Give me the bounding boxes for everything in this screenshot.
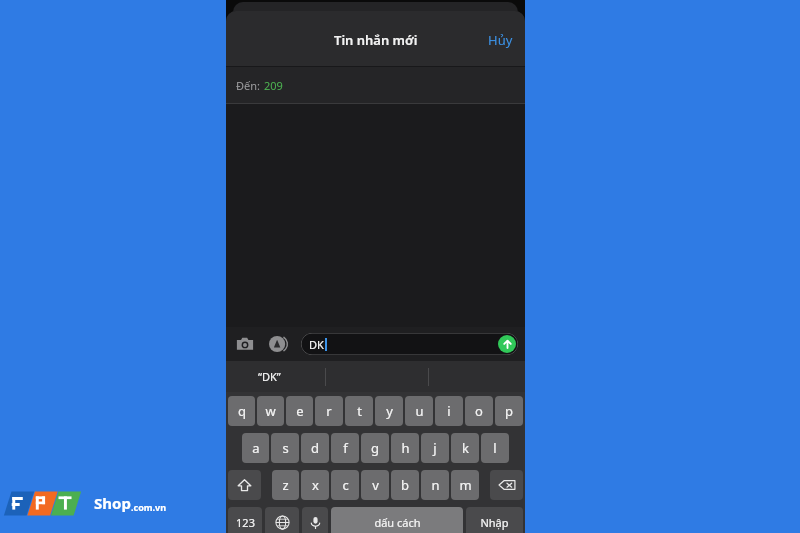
button[interactable]: Hủy bbox=[476, 25, 525, 55]
staticText: h bbox=[401, 439, 410, 457]
staticText: p bbox=[505, 402, 513, 420]
button[interactable]: 123 bbox=[228, 507, 262, 533]
button[interactable]: h bbox=[391, 433, 419, 463]
staticText: x bbox=[312, 476, 319, 494]
button[interactable]: b bbox=[391, 470, 419, 500]
button[interactable]: w bbox=[257, 396, 284, 426]
button[interactable]: Shift bbox=[228, 470, 261, 500]
button[interactable]: App Store bbox=[266, 332, 290, 356]
button[interactable]: Camera bbox=[233, 332, 257, 356]
button[interactable]: g bbox=[361, 433, 389, 463]
button[interactable]: p bbox=[495, 396, 523, 426]
staticText: u bbox=[415, 402, 424, 420]
staticText: i bbox=[447, 402, 451, 420]
button[interactable]: u bbox=[405, 396, 433, 426]
staticText: c bbox=[342, 476, 349, 494]
button[interactable]: DK bbox=[301, 333, 518, 355]
staticText: Hủy bbox=[488, 31, 513, 49]
staticText: DK bbox=[309, 337, 324, 352]
button[interactable]: n bbox=[421, 470, 449, 500]
staticText: Nhập bbox=[480, 515, 509, 530]
button[interactable]: a bbox=[242, 433, 269, 463]
button[interactable]: q bbox=[228, 396, 255, 426]
staticText: g bbox=[371, 439, 379, 457]
staticText: a bbox=[252, 439, 260, 457]
button[interactable]: s bbox=[271, 433, 299, 463]
button[interactable]: l bbox=[481, 433, 509, 463]
button[interactable]: Change keyboard bbox=[265, 507, 299, 533]
staticText: 123 bbox=[236, 515, 255, 530]
staticText: r bbox=[326, 402, 332, 420]
staticText: dấu cách bbox=[374, 515, 421, 530]
button[interactable]: t bbox=[345, 396, 373, 426]
button[interactable]: Send bbox=[498, 335, 516, 353]
staticText: d bbox=[311, 439, 319, 457]
button[interactable]: f bbox=[331, 433, 359, 463]
button[interactable]: z bbox=[272, 470, 299, 500]
staticText: j bbox=[433, 439, 437, 457]
staticText: m bbox=[459, 476, 472, 494]
staticText: s bbox=[282, 439, 289, 457]
staticText: t bbox=[357, 402, 362, 420]
staticText: z bbox=[282, 476, 289, 494]
staticText: 209 bbox=[264, 78, 283, 93]
button[interactable]: Backspace bbox=[490, 470, 523, 500]
staticText: k bbox=[462, 439, 469, 457]
button[interactable]: x bbox=[301, 470, 329, 500]
button[interactable]: dấu cách bbox=[331, 507, 463, 533]
staticText: l bbox=[493, 439, 497, 457]
button[interactable]: r bbox=[315, 396, 343, 426]
staticText: n bbox=[431, 476, 440, 494]
staticText: Tin nhắn mới bbox=[334, 31, 418, 49]
button[interactable]: m bbox=[451, 470, 479, 500]
staticText: y bbox=[386, 402, 393, 420]
button[interactable]: e bbox=[286, 396, 313, 426]
button[interactable]: Nhập bbox=[466, 507, 523, 533]
button[interactable]: i bbox=[435, 396, 463, 426]
staticText: q bbox=[238, 402, 246, 420]
button[interactable]: y bbox=[375, 396, 403, 426]
staticText: b bbox=[401, 476, 409, 494]
button[interactable]: j bbox=[421, 433, 449, 463]
staticText: Đến: bbox=[236, 78, 260, 93]
button[interactable]: k bbox=[451, 433, 479, 463]
button[interactable]: Dictation bbox=[302, 507, 328, 533]
staticText: w bbox=[265, 402, 276, 420]
button[interactable]: c bbox=[331, 470, 359, 500]
staticText: v bbox=[372, 476, 379, 494]
staticText: o bbox=[475, 402, 483, 420]
staticText: e bbox=[296, 402, 304, 420]
staticText: .com.vn bbox=[131, 501, 167, 513]
button[interactable]: o bbox=[465, 396, 493, 426]
staticText: Shop bbox=[94, 493, 131, 513]
button[interactable]: d bbox=[301, 433, 329, 463]
button[interactable]: v bbox=[361, 470, 389, 500]
staticText: f bbox=[343, 439, 348, 457]
button[interactable]: “DK” bbox=[258, 369, 281, 384]
